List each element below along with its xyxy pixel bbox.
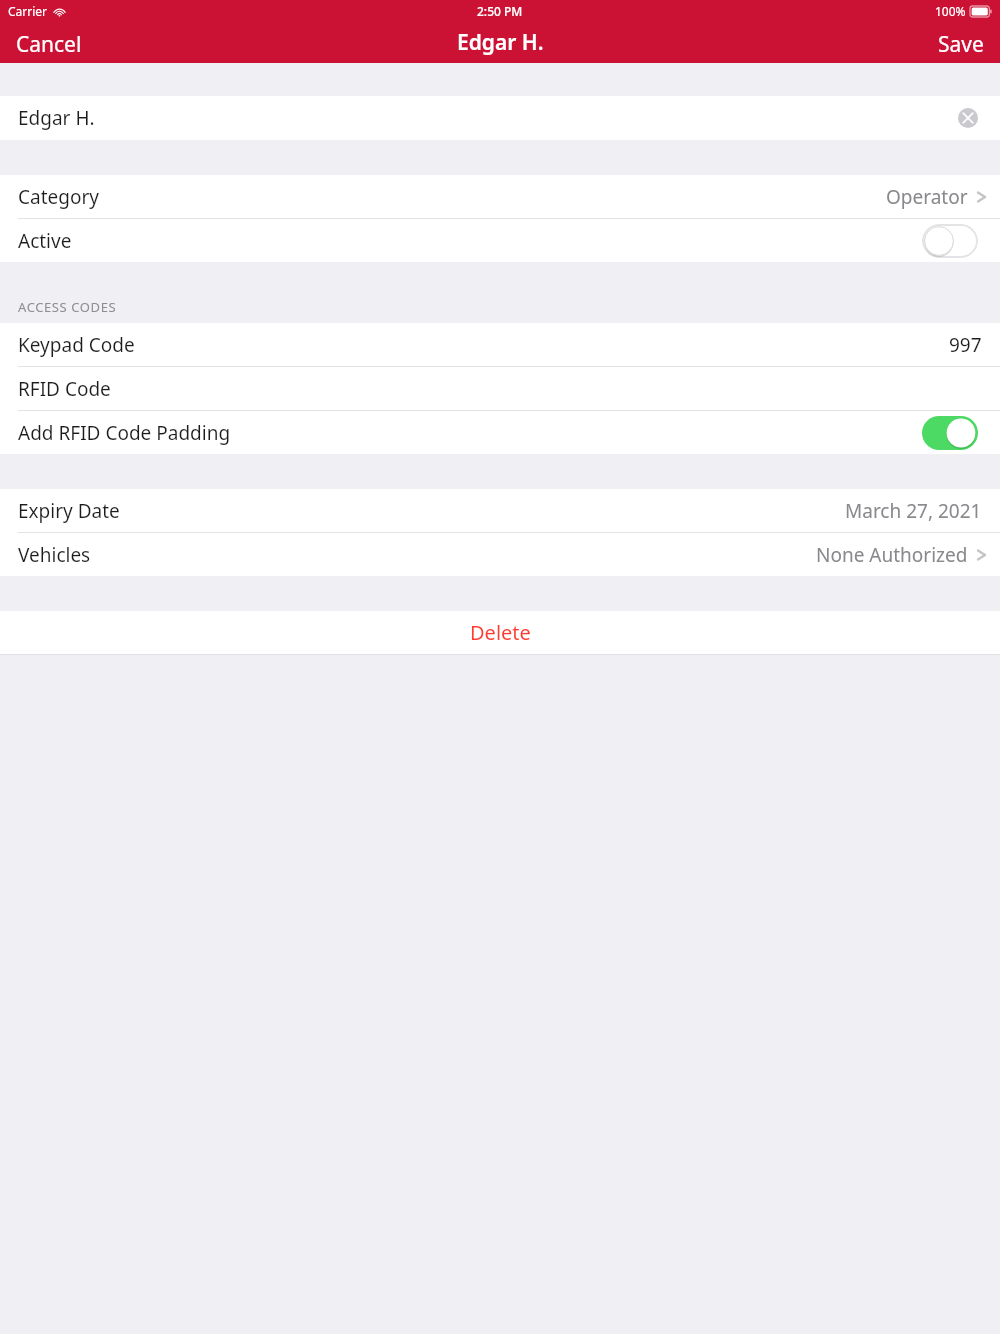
button[interactable]: RFID Code	[0, 367, 1000, 410]
button[interactable]: Cancel	[0, 22, 98, 63]
button[interactable]: Keypad Code	[0, 323, 1000, 366]
staticText: 100%	[935, 3, 966, 19]
button[interactable]: Clear text	[958, 108, 978, 128]
button[interactable]: Save	[922, 22, 1000, 63]
staticText: RFID Code	[18, 376, 111, 402]
button[interactable]: Vehicles	[0, 533, 1000, 576]
staticText: Carrier	[8, 3, 48, 19]
staticText: 2:50 PM	[477, 3, 523, 19]
button[interactable]: Add RFID Code Padding	[922, 416, 978, 450]
staticText: Cancel	[16, 30, 82, 55]
staticText: Edgar H.	[457, 28, 544, 57]
staticText: Active	[18, 228, 72, 254]
staticText: Vehicles	[18, 542, 91, 568]
staticText: 997	[949, 332, 982, 358]
button[interactable]: Edgar H.	[0, 96, 1000, 140]
button[interactable]: Delete	[0, 611, 1000, 654]
staticText: Save	[938, 30, 984, 55]
staticText: Keypad Code	[18, 332, 135, 358]
staticText: ACCESS CODES	[18, 298, 117, 316]
staticText: Expiry Date	[18, 498, 120, 524]
staticText: March 27, 2021	[845, 498, 982, 524]
staticText: None Authorized	[816, 542, 968, 568]
staticText: Add RFID Code Padding	[18, 420, 231, 446]
staticText: Operator	[886, 184, 968, 210]
staticText: Category	[18, 184, 99, 210]
button[interactable]: Category	[0, 175, 1000, 218]
button[interactable]: Expiry Date	[0, 489, 1000, 532]
staticText: Edgar H.	[18, 105, 95, 131]
staticText: Delete	[470, 619, 531, 646]
button[interactable]: Active	[922, 224, 978, 258]
